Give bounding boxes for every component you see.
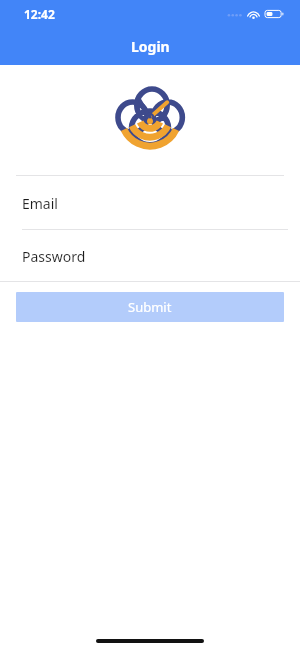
button[interactable]: Submit xyxy=(16,292,284,322)
button[interactable]: Password xyxy=(0,230,300,282)
staticText: Login xyxy=(131,37,170,56)
staticText: Email xyxy=(22,194,58,213)
staticText: Password xyxy=(22,247,86,266)
staticText: 12:42 xyxy=(24,6,55,22)
staticText: Submit xyxy=(128,298,172,316)
button[interactable]: Email xyxy=(0,176,300,230)
